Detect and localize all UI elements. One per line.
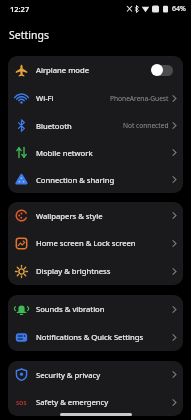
button[interactable]: Display & brightness <box>8 257 183 285</box>
staticText: Airplane mode <box>36 65 90 75</box>
button[interactable]: Bluetooth <box>8 112 183 139</box>
staticText: Mobile network <box>36 148 93 158</box>
button[interactable]: Notifications & Quick Settings <box>8 323 183 351</box>
staticText: Notifications & Quick Settings <box>36 332 144 342</box>
button[interactable]: Wi-Fi <box>8 84 183 112</box>
staticText: PhoneArena-Guest <box>110 94 169 103</box>
button[interactable]: Mobile network <box>8 139 183 166</box>
staticText: Connection & sharing <box>36 175 115 185</box>
staticText: Display & brightness <box>36 266 111 276</box>
button[interactable]: Sounds & vibration <box>8 295 183 323</box>
staticText: Not connected <box>123 121 169 130</box>
button[interactable]: Wallpapers & style <box>8 202 183 229</box>
staticText: Sounds & vibration <box>36 304 105 314</box>
staticText: Wi-Fi <box>36 93 54 103</box>
button[interactable]: SOS <box>8 388 183 416</box>
staticText: Wallpapers & style <box>36 211 103 221</box>
button[interactable]: Connection & sharing <box>8 166 183 193</box>
button[interactable]: Airplane mode <box>8 56 183 84</box>
staticText: 64% <box>172 4 186 14</box>
staticText: Security & privacy <box>36 370 101 380</box>
staticText: Bluetooth <box>36 121 72 131</box>
staticText: 12:27 <box>10 4 30 14</box>
staticText: Home screen & Lock screen <box>36 238 136 248</box>
button[interactable]: Home screen & Lock screen <box>8 229 183 257</box>
staticText: SOS <box>16 399 27 407</box>
staticText: Settings <box>9 28 49 42</box>
staticText: Safety & emergency <box>36 397 109 407</box>
button[interactable]: Security & privacy <box>8 361 183 388</box>
